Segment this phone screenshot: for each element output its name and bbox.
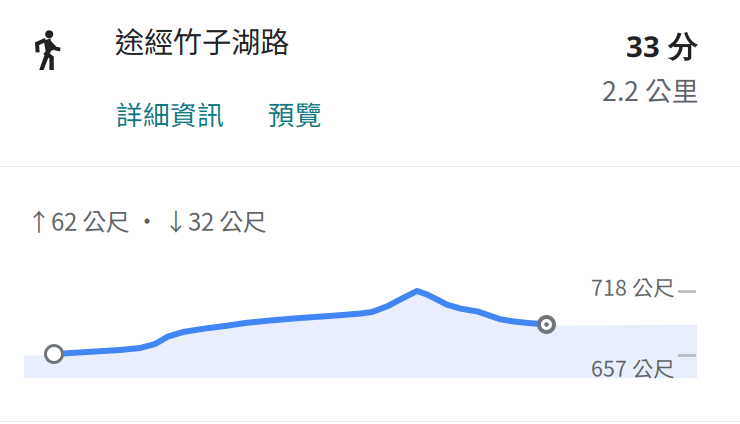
staticText: 657 公尺 <box>591 352 674 383</box>
staticText: 33 分 <box>626 26 697 66</box>
button[interactable]: 途經竹子湖路 <box>0 0 740 90</box>
staticText: 718 公尺 <box>591 271 674 302</box>
staticText: 2.2 公里 <box>602 70 699 109</box>
staticText: 途經竹子湖路 <box>115 19 289 61</box>
staticText: 預覽 <box>268 94 322 133</box>
staticText: 詳細資訊 <box>116 94 224 133</box>
staticText: ↑62 公尺 · ↓32 公尺 <box>27 203 267 238</box>
button[interactable]: 預覽 <box>266 88 324 139</box>
button[interactable]: 詳細資訊 <box>114 88 226 139</box>
